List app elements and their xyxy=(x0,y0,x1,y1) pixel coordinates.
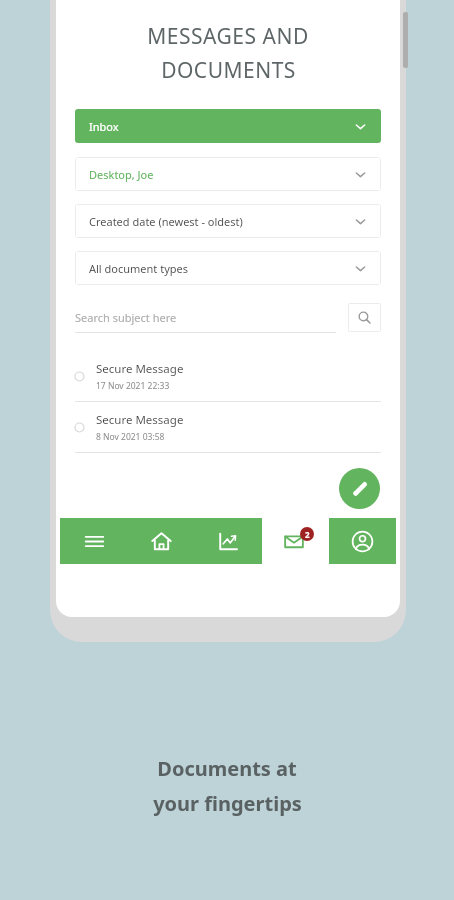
button[interactable]: Compose message xyxy=(339,468,380,509)
button[interactable]: Created date (newest - oldest) xyxy=(75,204,381,238)
button[interactable]: Desktop, Joe xyxy=(75,157,381,191)
staticText: Secure Message xyxy=(96,412,184,428)
button[interactable]: Secure Message xyxy=(56,402,400,452)
button[interactable]: Search subject here xyxy=(75,301,336,333)
staticText: MESSAGES AND xyxy=(147,22,309,51)
button[interactable]: Profile xyxy=(329,518,396,564)
button[interactable]: Search xyxy=(348,303,381,332)
staticText: Inbox xyxy=(89,119,119,134)
button[interactable]: Menu xyxy=(60,518,128,564)
button[interactable]: Messages xyxy=(262,518,329,564)
staticText: Created date (newest - oldest) xyxy=(89,214,243,229)
staticText: Desktop, Joe xyxy=(89,167,154,182)
button[interactable]: Secure Message xyxy=(56,351,400,401)
staticText: 8 Nov 2021 03:58 xyxy=(96,431,165,443)
staticText: Secure Message xyxy=(96,361,184,377)
staticText: All document types xyxy=(89,261,188,276)
button[interactable]: Inbox xyxy=(75,109,381,143)
staticText: Search subject here xyxy=(75,310,177,325)
button[interactable]: Reports xyxy=(195,518,262,564)
staticText: Documents at xyxy=(157,755,297,782)
staticText: your fingertips xyxy=(153,790,302,817)
button[interactable]: All document types xyxy=(75,251,381,285)
staticText: DOCUMENTS xyxy=(161,56,296,85)
staticText: 17 Nov 2021 22:33 xyxy=(96,380,170,392)
staticText: 2 xyxy=(305,529,310,540)
button[interactable]: Home xyxy=(128,518,195,564)
